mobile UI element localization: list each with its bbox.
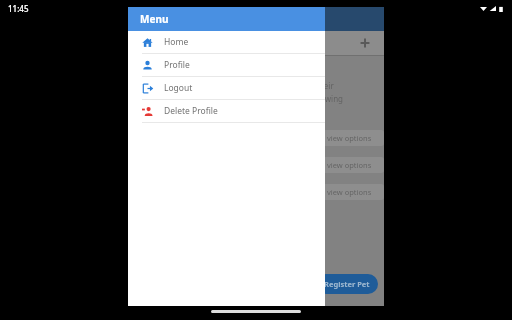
staticText: llowing [316, 93, 344, 104]
staticText: view options [327, 133, 372, 143]
staticText: view options [327, 187, 372, 197]
button[interactable]: Add [358, 36, 372, 50]
staticText: Menu [140, 12, 169, 26]
staticText: view options [327, 160, 372, 170]
staticText: Profile [164, 59, 190, 71]
staticText: Delete Profile [164, 105, 218, 117]
button[interactable]: view options [314, 130, 384, 146]
staticText: Logout [164, 82, 193, 94]
staticText: 11:45 [8, 3, 29, 14]
staticText: their [316, 80, 334, 91]
button[interactable]: Home [128, 31, 325, 53]
staticText: Home [164, 36, 189, 48]
staticText: Register Pet [324, 279, 370, 289]
button[interactable]: Profile [128, 54, 325, 76]
button[interactable]: view options [314, 184, 384, 200]
button[interactable]: Delete Profile [128, 100, 325, 122]
button[interactable]: Register Pet [316, 274, 378, 294]
button[interactable]: view options [314, 157, 384, 173]
button[interactable]: Logout [128, 77, 325, 99]
